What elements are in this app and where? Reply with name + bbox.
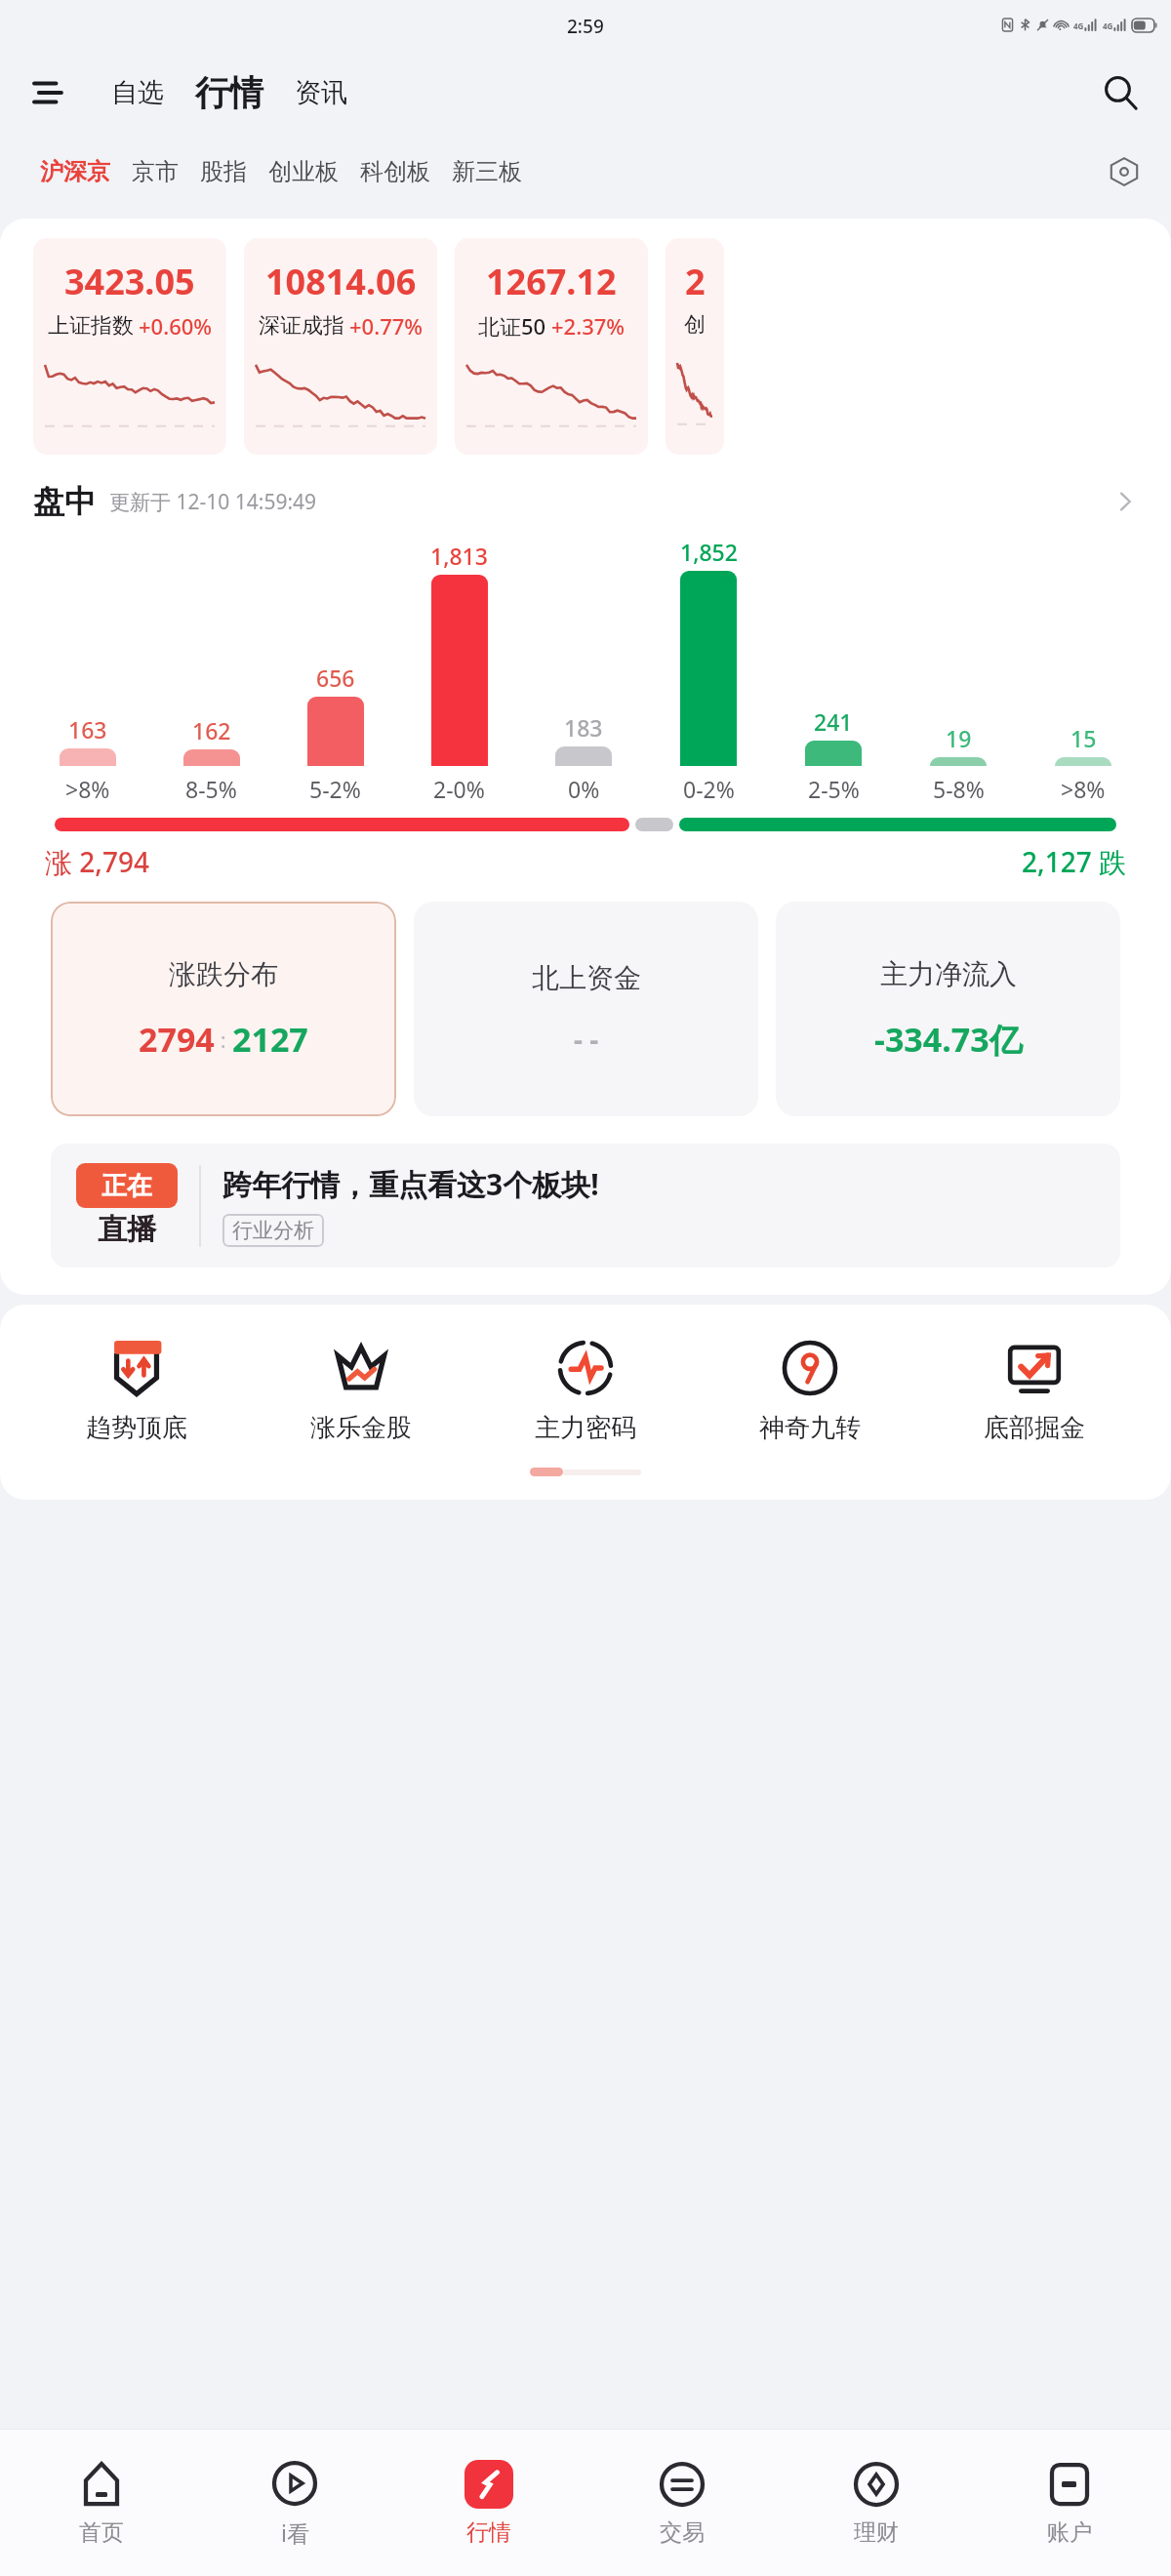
staticText: 理财 — [854, 2518, 899, 2547]
staticText: 2-5% — [808, 774, 860, 804]
button[interactable]: 主力净流入 — [776, 902, 1120, 1116]
staticText: 183 — [564, 712, 603, 743]
button[interactable]: 行情 — [191, 69, 267, 116]
staticText: 神奇九转 — [759, 1412, 861, 1444]
staticText: 北上资金 — [532, 961, 641, 995]
button[interactable]: 科创板 — [349, 149, 441, 194]
staticText: 深证成指 — [259, 312, 344, 340]
staticText: 2:59 — [567, 14, 604, 39]
button[interactable]: 资讯 — [289, 70, 353, 115]
button[interactable]: 股指 — [189, 149, 258, 194]
staticText: 跨年行情，重点看这3个板块! — [222, 1164, 599, 1204]
staticText: 创业板 — [268, 157, 339, 186]
staticText: 盘中 — [33, 482, 96, 521]
staticText: 京市 — [132, 157, 179, 186]
button[interactable]: 162 — [149, 715, 273, 804]
button[interactable]: 新三板 — [441, 149, 533, 194]
staticText: 8-5% — [185, 774, 237, 804]
button[interactable]: 行情 — [396, 2430, 582, 2576]
staticText: 2,127 跌 — [1022, 843, 1126, 880]
staticText: 底部掘金 — [984, 1412, 1085, 1444]
staticText: 股指 — [200, 157, 247, 186]
staticText: 主力净流入 — [880, 957, 1017, 991]
staticText: 沪深京 — [40, 157, 110, 186]
button[interactable]: 底部掘金 — [947, 1338, 1122, 1444]
button[interactable]: 2 — [666, 238, 724, 455]
button[interactable]: 15 — [1021, 723, 1146, 804]
button[interactable]: 盘中 — [0, 482, 1171, 521]
staticText: 5-8% — [933, 774, 985, 804]
staticText: 资讯 — [295, 76, 347, 109]
staticText: 656 — [316, 663, 355, 693]
staticText: 2 — [685, 258, 706, 305]
button[interactable]: 3423.05 — [33, 238, 226, 455]
staticText: 交易 — [660, 2518, 705, 2547]
staticText: 1,852 — [680, 537, 738, 567]
button[interactable]: 自选 — [105, 70, 170, 115]
button[interactable]: Search — [1095, 67, 1146, 118]
button[interactable]: 沪深京 — [29, 149, 121, 194]
button[interactable]: 首页 — [9, 2430, 194, 2576]
button[interactable]: 10814.06 — [244, 238, 437, 455]
button[interactable]: 创业板 — [258, 149, 349, 194]
button[interactable]: 神奇九转 — [722, 1338, 898, 1444]
staticText: 主力密码 — [535, 1412, 636, 1444]
staticText: 162 — [192, 715, 231, 745]
staticText: 直播 — [98, 1211, 156, 1248]
button[interactable]: 183 — [521, 712, 646, 804]
staticText: 趋势顶底 — [86, 1412, 187, 1444]
staticText: 5-2% — [309, 774, 361, 804]
staticText: 涨 2,794 — [45, 843, 149, 880]
button[interactable]: 主力密码 — [498, 1338, 673, 1444]
staticText: 2127 — [232, 1017, 308, 1062]
button[interactable]: 656 — [273, 663, 397, 804]
staticText: +0.77% — [349, 311, 424, 341]
button[interactable]: 1,852 — [646, 537, 771, 804]
staticText: 19 — [946, 723, 972, 753]
staticText: +2.37% — [551, 311, 626, 341]
staticText: 4G — [1103, 20, 1113, 31]
button[interactable]: 涨乐金股 — [273, 1338, 449, 1444]
button[interactable]: 19 — [896, 723, 1021, 804]
staticText: 正在 — [101, 1170, 152, 1202]
staticText: 首页 — [79, 2518, 124, 2547]
staticText: 0% — [568, 774, 600, 804]
button[interactable]: 京市 — [121, 149, 189, 194]
staticText: 科创板 — [360, 157, 430, 186]
button[interactable]: Menu — [25, 69, 72, 116]
staticText: 行情 — [195, 71, 263, 114]
staticText: 2-0% — [433, 774, 485, 804]
button[interactable]: 理财 — [784, 2430, 969, 2576]
staticText: 行情 — [466, 2518, 511, 2547]
staticText: 10814.06 — [265, 258, 417, 305]
staticText: 4G — [1073, 20, 1084, 31]
button[interactable]: 趋势顶底 — [49, 1338, 224, 1444]
button[interactable]: 1267.12 — [455, 238, 648, 455]
button[interactable]: 1,813 — [397, 541, 521, 804]
button[interactable]: 账户 — [977, 2430, 1162, 2576]
button[interactable]: 241 — [771, 706, 896, 804]
button[interactable]: i看 — [202, 2430, 387, 2576]
staticText: >8% — [65, 774, 110, 804]
staticText: 241 — [814, 706, 853, 737]
staticText: : — [215, 1025, 232, 1054]
staticText: - - — [574, 1021, 599, 1058]
button[interactable]: Filter — [1099, 146, 1150, 197]
staticText: i看 — [281, 2517, 309, 2548]
staticText: 更新于 12-10 14:59:49 — [109, 488, 317, 516]
button[interactable]: 交易 — [589, 2430, 775, 2576]
staticText: >8% — [1061, 774, 1106, 804]
staticText: 涨跌分布 — [169, 957, 278, 991]
staticText: 1,813 — [430, 541, 488, 571]
staticText: 163 — [68, 714, 107, 745]
staticText: 账户 — [1047, 2518, 1092, 2547]
staticText: 创 — [684, 311, 706, 339]
button[interactable]: 正在 — [51, 1144, 1120, 1268]
button[interactable]: 163 — [25, 714, 149, 804]
staticText: 上证指数 — [48, 312, 134, 340]
staticText: 15 — [1070, 723, 1097, 753]
button[interactable]: 北上资金 — [414, 902, 758, 1116]
staticText: 新三板 — [452, 157, 522, 186]
staticText: -334.73亿 — [874, 1017, 1023, 1062]
button[interactable]: 涨跌分布 — [51, 902, 396, 1116]
